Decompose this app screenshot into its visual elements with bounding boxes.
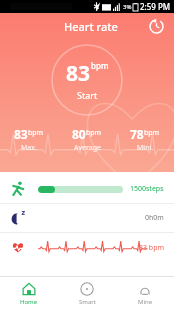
staticText: Max. xyxy=(21,143,37,153)
button[interactable]: Home xyxy=(0,277,58,310)
staticText: 83 bpm xyxy=(139,243,164,253)
staticText: 3% xyxy=(123,3,132,11)
staticText: 83 xyxy=(66,59,91,88)
staticText: 0h0m xyxy=(145,213,164,223)
staticText: Start xyxy=(77,89,98,101)
staticText: bpm xyxy=(86,128,102,138)
button[interactable]: 83 xyxy=(51,44,123,116)
other: Heart rate xyxy=(10,240,26,256)
button[interactable]: Mine xyxy=(116,277,174,310)
staticText: bpm xyxy=(91,60,109,71)
other: Steps xyxy=(10,181,26,197)
staticText: bpm xyxy=(28,128,44,138)
button[interactable]: Sleep xyxy=(0,204,174,232)
staticText: Mine xyxy=(138,298,153,306)
staticText: Smart xyxy=(79,298,96,306)
button[interactable]: Heart rate xyxy=(0,233,174,263)
staticText: 83 xyxy=(14,126,28,142)
button[interactable]: History xyxy=(138,13,174,39)
staticText: 1500steps xyxy=(130,184,164,194)
staticText: bpm xyxy=(144,128,160,138)
staticText: 80 xyxy=(72,126,86,142)
staticText: Home xyxy=(20,298,38,306)
staticText: Heart rate xyxy=(64,19,118,34)
staticText: 2:59 PM xyxy=(140,1,171,12)
button[interactable]: Steps xyxy=(0,175,174,203)
other: Sleep xyxy=(10,210,26,226)
staticText: 78 xyxy=(130,126,144,142)
staticText: Mini. xyxy=(137,143,154,153)
staticText: Average xyxy=(74,143,101,153)
button[interactable]: Smart xyxy=(58,277,116,310)
